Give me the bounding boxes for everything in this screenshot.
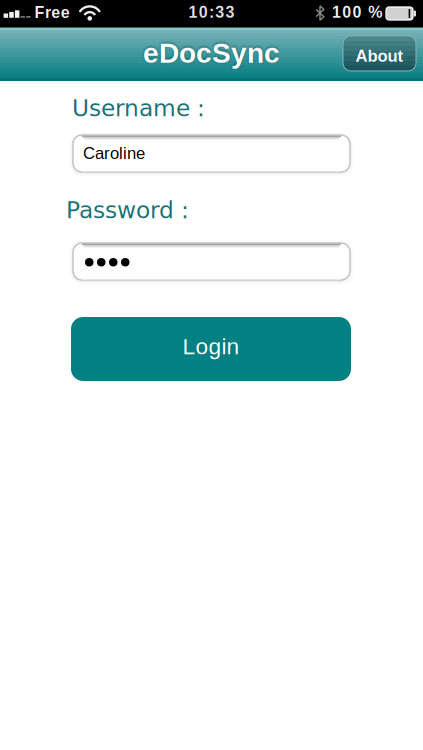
staticText: 100 % [332,3,382,21]
staticText: 10:33 [188,3,235,21]
staticText: Free [34,3,70,21]
button[interactable]: Login [71,317,351,381]
staticText: Password : [66,196,189,224]
staticText: Login [182,334,239,359]
button[interactable]: Username text field [73,135,350,172]
staticText: Username : [72,94,205,122]
staticText: About [355,47,403,65]
staticText: eDocSync [143,37,280,69]
button[interactable]: About [343,36,416,71]
button[interactable]: Password text field [73,243,350,280]
staticText: Caroline [83,144,145,163]
